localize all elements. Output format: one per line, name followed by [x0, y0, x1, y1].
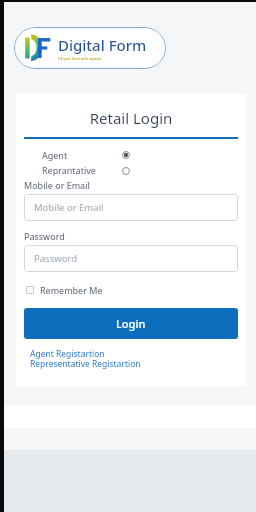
staticText: Agent Registartion	[30, 348, 105, 360]
staticText: Digital Form	[58, 35, 147, 55]
staticText: Fill your form with experts	[58, 56, 102, 61]
staticText: Password	[34, 252, 77, 265]
staticText: Password	[24, 230, 65, 242]
staticText: Reprantative	[42, 164, 96, 176]
button[interactable]: Agent Registartion	[30, 348, 105, 360]
staticText: Mobile or Email	[24, 179, 90, 191]
button[interactable]: Mobile or Email	[24, 194, 238, 221]
button[interactable]: Login	[24, 308, 238, 339]
button[interactable]: Remember Me	[24, 282, 105, 298]
staticText: Remember Me	[40, 284, 103, 296]
button[interactable]: Representative Registartion	[30, 358, 141, 370]
button[interactable]: Password	[24, 245, 238, 272]
staticText: Mobile or Email	[34, 201, 104, 214]
staticText: Login	[116, 316, 146, 331]
button[interactable]: Digital Form logo	[14, 27, 166, 69]
staticText: Agent	[42, 149, 68, 161]
button[interactable]: Representative	[120, 165, 132, 177]
button[interactable]: Agent selected	[120, 149, 132, 161]
staticText: Representative Registartion	[30, 358, 141, 370]
staticText: Retail Login	[16, 108, 246, 128]
